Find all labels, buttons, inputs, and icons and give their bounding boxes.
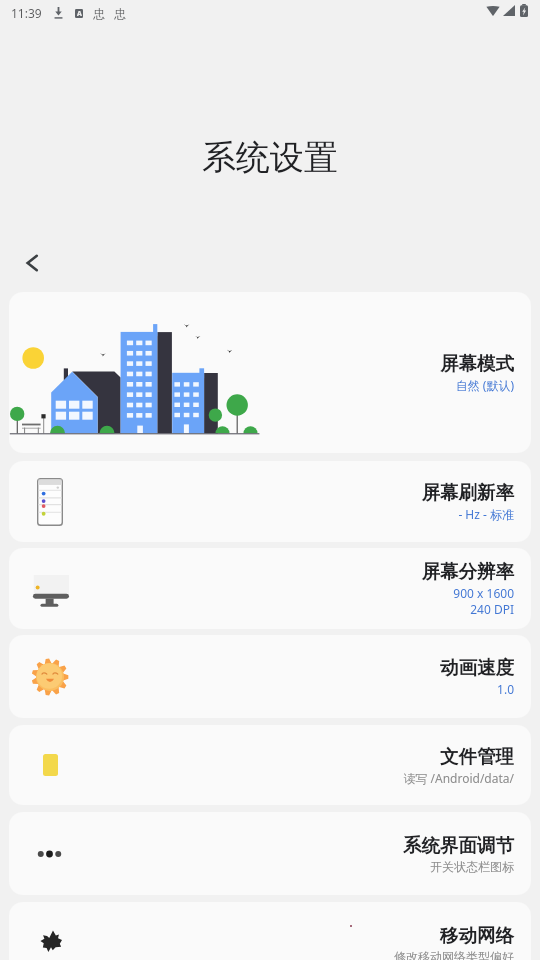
staticText: 开关状态栏图标 [430, 859, 514, 874]
button[interactable]: 系统界面调节 [9, 812, 531, 895]
button[interactable]: 动画速度 [9, 635, 531, 718]
button[interactable]: 移动网络 [9, 902, 531, 960]
staticText: 系统设置 [0, 136, 540, 179]
staticText: 读写 /Android/data/ [403, 770, 514, 786]
staticText: 屏幕刷新率 [421, 481, 514, 504]
staticText: 修改移动网络类型偏好 [394, 949, 514, 960]
staticText: 屏幕分辨率 [421, 560, 514, 583]
staticText: 系统界面调节 [403, 834, 514, 857]
button[interactable]: 屏幕分辨率 [9, 548, 531, 629]
button[interactable]: Back [14, 245, 50, 281]
staticText: 移动网络 [440, 924, 514, 947]
staticText: - Hz - 标准 [458, 506, 514, 522]
staticText: 忠 [93, 6, 105, 21]
staticText: A [77, 9, 82, 18]
staticText: 自然 (默认) [455, 377, 514, 393]
button[interactable]: 文件管理 [9, 725, 531, 805]
staticText: 屏幕模式 [440, 352, 514, 375]
staticText: 文件管理 [440, 745, 514, 768]
staticText: 1.0 [497, 681, 514, 697]
button[interactable]: 屏幕模式 [9, 292, 531, 453]
staticText: 11:39 [11, 5, 42, 21]
staticText: 240 DPI [470, 601, 514, 617]
staticText: 900 x 1600 [453, 585, 514, 601]
staticText: 忠 [114, 6, 126, 21]
staticText: 动画速度 [440, 656, 514, 679]
button[interactable]: 屏幕刷新率 [9, 461, 531, 542]
